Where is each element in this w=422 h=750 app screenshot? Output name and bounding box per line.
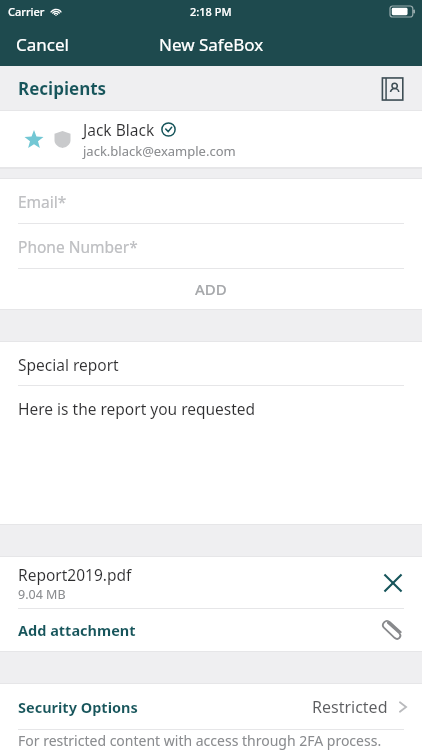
staticText: Special report — [18, 354, 119, 375]
button[interactable]: Special report — [0, 342, 422, 386]
staticText: Security Options — [18, 697, 138, 717]
button[interactable]: Choose from contacts — [374, 71, 410, 107]
staticText: Add attachment — [18, 620, 136, 640]
button[interactable]: Add attachment — [0, 609, 422, 651]
staticText: For restricted content with access throu… — [18, 731, 382, 750]
button[interactable]: Phone Number* — [0, 224, 422, 269]
staticText: New SafeBox — [159, 33, 264, 56]
button[interactable]: Email* — [0, 179, 422, 224]
button[interactable]: Cancel — [0, 23, 85, 66]
staticText: Report2019.pdf — [18, 564, 132, 585]
staticText: Restricted — [312, 696, 388, 718]
button[interactable]: ADD — [0, 269, 422, 309]
staticText: 2:18 PM — [190, 4, 232, 19]
button[interactable]: Security Options — [0, 684, 422, 730]
button[interactable]: Remove attachment — [378, 568, 408, 598]
staticText: Recipients — [18, 77, 107, 100]
staticText: jack.black@example.com — [83, 142, 236, 160]
button[interactable]: Jack Black — [0, 111, 422, 168]
staticText: Carrier — [8, 4, 45, 19]
staticText: ADD — [195, 279, 227, 299]
staticText: Cancel — [16, 33, 69, 56]
staticText: Email* — [18, 191, 67, 212]
staticText: 9.04 MB — [18, 586, 66, 603]
staticText: Phone Number* — [18, 236, 138, 257]
button[interactable]: Here is the report you requested — [0, 386, 422, 430]
staticText: Jack Black — [83, 119, 155, 140]
staticText: Here is the report you requested — [18, 398, 256, 419]
